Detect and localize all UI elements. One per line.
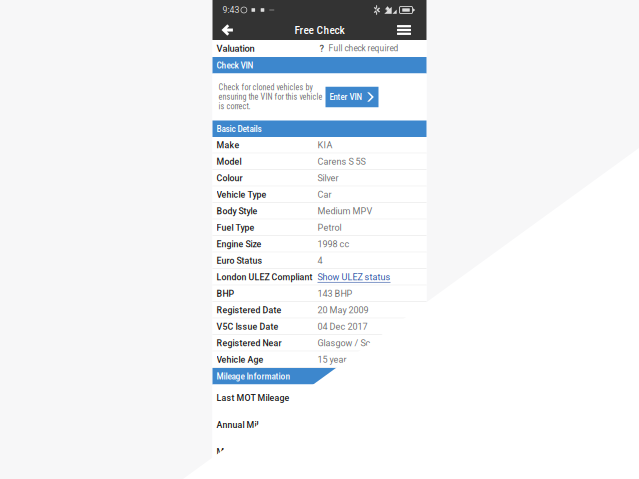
staticText: Last MOT Mileage — [216, 393, 289, 403]
staticText: Vehicle Type — [216, 190, 266, 200]
staticText: Basic Details — [216, 123, 261, 134]
staticText: London ULEZ Compliant — [216, 272, 312, 282]
staticText: 15 year — [317, 354, 346, 365]
staticText: Show ULEZ status — [317, 272, 390, 282]
staticText: Carens S 5S — [317, 156, 365, 167]
staticText: M — [216, 447, 224, 457]
button[interactable]: Back — [214, 20, 240, 40]
staticText: Body Style — [216, 206, 257, 216]
staticText: 1998 cc — [317, 239, 349, 249]
staticText: Enter VIN — [330, 92, 363, 102]
staticText: Free Check — [294, 23, 344, 37]
staticText: Engine Size — [216, 239, 261, 249]
staticText: 143 BHP — [317, 288, 352, 299]
staticText: BHP — [216, 289, 234, 299]
staticText: Mileage Information — [216, 371, 290, 382]
staticText: Annual Mil — [216, 420, 258, 430]
staticText: ? — [319, 43, 324, 54]
staticText: Silver — [317, 173, 338, 183]
staticText: 04 Dec 2017 — [317, 321, 367, 332]
button[interactable]: Enter VIN — [325, 87, 378, 107]
staticText: Petrol — [317, 222, 341, 233]
staticText: Model — [216, 157, 241, 167]
staticText: Medium MPV — [317, 206, 372, 216]
staticText: Check for cloned vehicles by ensuring th… — [218, 83, 322, 111]
staticText: Car — [317, 189, 331, 200]
staticText: Valuation — [216, 43, 254, 54]
staticText: Vehicle Age — [216, 355, 263, 365]
staticText: Euro Status — [216, 256, 262, 266]
staticText: Check VIN — [216, 60, 253, 71]
staticText: Registered Near — [216, 338, 281, 348]
staticText: 20 May 2009 — [317, 305, 368, 315]
staticText: V5C Issue Date — [216, 322, 278, 332]
staticText: Fuel Type — [216, 223, 254, 233]
staticText: Full check required — [324, 44, 398, 53]
staticText: 9:43 — [222, 5, 239, 15]
staticText: Glasgow / Sc — [317, 338, 370, 348]
staticText: Make — [216, 140, 239, 150]
staticText: Colour — [216, 173, 242, 183]
staticText: KIA — [317, 140, 332, 150]
staticText: Registered Date — [216, 305, 281, 315]
staticText: 4 — [317, 255, 322, 266]
button[interactable]: Menu — [391, 20, 417, 40]
